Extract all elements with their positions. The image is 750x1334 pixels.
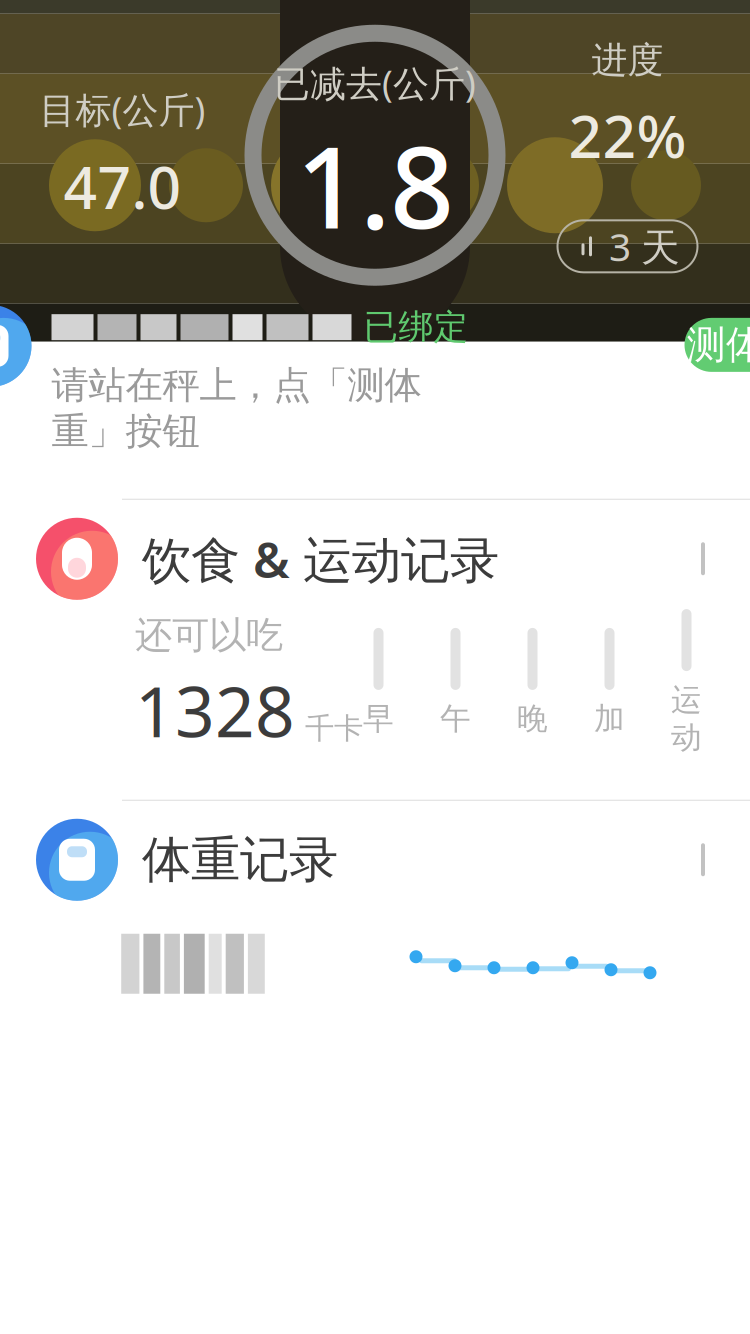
staticText: 千卡 (305, 710, 363, 746)
staticText: 饮食 & 运动记录 (142, 526, 499, 591)
staticText: 1328 (135, 664, 295, 756)
staticText: 已绑定 (363, 306, 468, 348)
staticText: 目标(公斤) (39, 85, 205, 133)
staticText: 还可以吃 (135, 612, 283, 658)
staticText: 早 (363, 700, 394, 738)
button[interactable]: 测体重 (684, 318, 750, 372)
staticText: 1.8 (296, 111, 454, 259)
staticText: 进度 (591, 38, 663, 82)
staticText: 已减去(公斤) (274, 59, 476, 107)
staticText: 3 天 (609, 221, 680, 272)
staticText: 22% (568, 96, 686, 174)
staticText: 请站在秤上，点「测体重」按钮 (51, 362, 421, 454)
staticText: 体重记录 (142, 829, 338, 890)
button[interactable]: 饮食 & 运动记录 (0, 500, 750, 800)
staticText: 午 (440, 700, 471, 738)
staticText: 加 (594, 700, 625, 738)
button[interactable]: 3 天 (557, 220, 697, 272)
staticText: 运动 (671, 681, 702, 756)
button[interactable]: 体重记录 (0, 801, 750, 1033)
button[interactable]: 已绑定 (0, 342, 750, 499)
staticText: 测体重 (687, 321, 750, 369)
staticText: 晚 (517, 700, 548, 738)
staticText: 47.0 (63, 147, 181, 225)
